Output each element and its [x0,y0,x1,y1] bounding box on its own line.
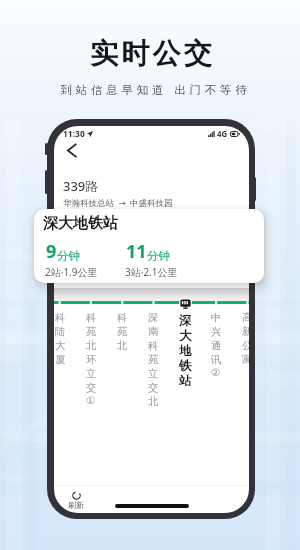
button[interactable]: 深 [147,311,159,409]
staticText: ② [211,367,221,379]
staticText: 站 [179,373,192,388]
button[interactable]: 中 [210,311,222,381]
staticText: 苑 [148,353,159,366]
button[interactable]: 科 [54,311,66,367]
staticText: 北 [86,339,97,352]
staticText: 交 [148,381,159,394]
staticText: 南 [148,325,159,338]
staticText: 4G [217,128,228,139]
button[interactable]: 高 [241,311,249,367]
staticText: 高 [242,311,249,324]
staticText: 苑 [117,325,128,338]
button[interactable]: Back [58,139,86,161]
staticText: 科 [55,311,66,324]
staticText: 科 [86,311,97,324]
staticText: 中 [211,311,222,324]
staticText: 11 [126,239,147,264]
button[interactable]: 深大地铁站 [34,209,264,283]
staticText: 环 [86,353,97,366]
staticText: 厦 [55,353,66,366]
staticText: 铁 [179,358,192,373]
staticText: 分钟 [147,249,170,263]
button[interactable]: 深 [178,313,192,388]
staticText: 陆 [55,325,66,338]
button[interactable]: 科 [85,311,97,409]
staticText: 9 [46,239,57,264]
staticText: 交 [86,381,97,394]
staticText: 立 [148,367,159,380]
staticText: 寓 [242,353,249,366]
staticText: 地 [179,343,192,358]
staticText: 刷新 [68,500,84,510]
staticText: 深 [179,313,192,328]
staticText: 通 [211,339,222,352]
staticText: 苑 [86,325,97,338]
staticText: 实时公交 [90,36,215,71]
staticText: ① [86,395,96,407]
staticText: 科 [148,339,159,352]
staticText: 2站·1.9公里 [45,265,98,279]
staticText: 大 [179,328,192,343]
staticText: 北 [148,395,159,408]
button[interactable]: 科 [116,311,128,353]
staticText: 华瀚科技总站 → 中盛科技园 [63,197,173,209]
staticText: 大 [55,339,66,352]
button[interactable]: 刷新 [68,491,84,510]
staticText: 到站信息早知道 出门不等待 [60,82,251,98]
staticText: 339路 [63,177,99,195]
staticText: 科 [117,311,128,324]
staticText: 公 [242,339,249,352]
staticText: 北 [117,339,128,352]
staticText: 立 [86,367,97,380]
staticText: 新 [242,325,249,338]
staticText: 分钟 [57,249,80,263]
staticText: 讯 [211,353,222,366]
staticText: 深大地铁站 [43,214,118,233]
staticText: 深 [148,311,159,324]
staticText: 兴 [211,325,222,338]
staticText: 11:30 [63,128,85,140]
staticText: 3站·2.1公里 [125,265,178,279]
